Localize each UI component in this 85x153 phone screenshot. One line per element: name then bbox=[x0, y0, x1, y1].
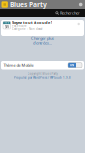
button[interactable]: Menu bbox=[79, 3, 85, 6]
button[interactable]: 31 bbox=[1, 20, 84, 36]
button[interactable]: Thème de Mobile bbox=[1, 61, 84, 69]
staticText: Copyright Blues Party bbox=[27, 72, 57, 75]
staticText: Blues Party bbox=[10, 0, 47, 9]
button[interactable]: Propulsé par WordPress / WPtouch 1.9.8 bbox=[14, 76, 71, 79]
staticText: ON bbox=[70, 63, 74, 67]
staticText: 31 bbox=[5, 24, 9, 29]
button[interactable]: Rechercher bbox=[55, 10, 85, 16]
button[interactable]: Site icon bbox=[0, 1, 8, 8]
staticText: Rechercher bbox=[60, 10, 80, 16]
staticText: d'entrées… bbox=[33, 40, 52, 45]
button[interactable]: Charger plus bbox=[0, 36, 85, 44]
staticText: Propulsé par WordPress / WPtouch 1.9.8 bbox=[14, 76, 71, 79]
staticText: Thème de Mobile bbox=[3, 63, 33, 68]
staticText: Catégorie : Non classé bbox=[12, 27, 43, 31]
staticText: Charger plus bbox=[31, 35, 54, 41]
staticText: Pas encore bbox=[12, 24, 27, 28]
staticText: Soyez tout à coude ! bbox=[12, 20, 52, 25]
